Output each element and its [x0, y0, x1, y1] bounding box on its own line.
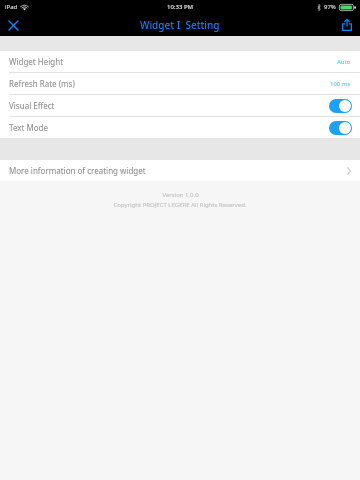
- button[interactable]: Text Mode: [0, 117, 360, 138]
- button[interactable]: Share: [334, 14, 360, 36]
- staticText: Version 1.0.0: [162, 191, 199, 199]
- staticText: 10:33 PM: [167, 3, 194, 11]
- button[interactable]: Close: [0, 14, 26, 36]
- staticText: Refresh Rate (ms): [9, 78, 75, 89]
- staticText: Visual Effect: [9, 100, 55, 111]
- button[interactable]: Widget Height: [0, 51, 360, 72]
- staticText: More information of creating widget: [9, 165, 146, 176]
- staticText: Widget Height: [9, 56, 64, 67]
- staticText: Text Mode: [9, 122, 48, 133]
- button[interactable]: Visual Effect: [0, 95, 360, 116]
- staticText: iPad: [5, 3, 18, 11]
- button[interactable]: Toggle: [329, 121, 352, 135]
- staticText: 97%: [324, 3, 336, 11]
- staticText: 100 ms: [330, 80, 351, 88]
- staticText: Auto: [337, 58, 351, 66]
- button[interactable]: Toggle: [329, 99, 352, 113]
- staticText: Widget I Setting: [140, 18, 220, 32]
- staticText: Copyright PROJECT LEGERE All Rights Rese…: [113, 201, 247, 209]
- button[interactable]: More information of creating widget: [0, 160, 360, 181]
- button[interactable]: Refresh Rate (ms): [0, 73, 360, 94]
